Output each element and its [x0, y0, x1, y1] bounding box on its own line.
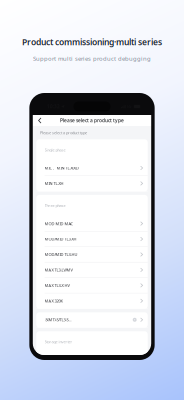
button[interactable]: SPH 3000-6000: [36, 368, 148, 383]
staticText: MIC、MIN TL-X(XE): [45, 165, 79, 171]
staticText: Three phase: [45, 203, 66, 208]
staticText: MAX TL3-X HV: [45, 283, 70, 288]
staticText: SPF 3000-5000ES: [45, 357, 73, 363]
staticText: Please select a product type: [60, 117, 124, 124]
button[interactable]: MIC、MIN TL-X(XE): [36, 160, 148, 176]
staticText: MOD/MID TL3-XH: [45, 236, 77, 242]
staticText: Support multi series product debugging: [33, 54, 151, 62]
button[interactable]: Back: [33, 115, 47, 126]
staticText: MAX 320K: [45, 298, 63, 303]
button[interactable]: MIN TL-XH: [36, 176, 148, 191]
button[interactable]: SPF 3000-5000ES: [36, 352, 148, 368]
button[interactable]: MOD MID MAC: [36, 216, 148, 231]
button[interactable]: MAX 320K: [36, 293, 148, 309]
staticText: Please select a product type: [40, 130, 87, 135]
staticText: MOD/MID TL3-HU: [45, 252, 78, 257]
staticText: MOD MID MAC: [45, 221, 74, 226]
button[interactable]: MOD/MID TL3-HU: [36, 247, 148, 262]
staticText: -S(MT)-S/TL3-S...: [45, 317, 72, 322]
button[interactable]: MOD/MID TL3-XH: [36, 232, 148, 247]
staticText: Product commissioning·multi series: [22, 36, 162, 48]
button[interactable]: MAX TL3-LV/MV: [36, 262, 148, 278]
staticText: Storage inverter: [45, 339, 73, 344]
staticText: Single phase: [45, 147, 66, 153]
staticText: MIN TL-XH: [45, 181, 64, 186]
button[interactable]: MAX TL3-X HV: [36, 278, 148, 293]
button[interactable]: -S(MT)-S/TL3-S...: [36, 312, 148, 328]
staticText: MAX TL3-LV/MV: [45, 267, 73, 273]
